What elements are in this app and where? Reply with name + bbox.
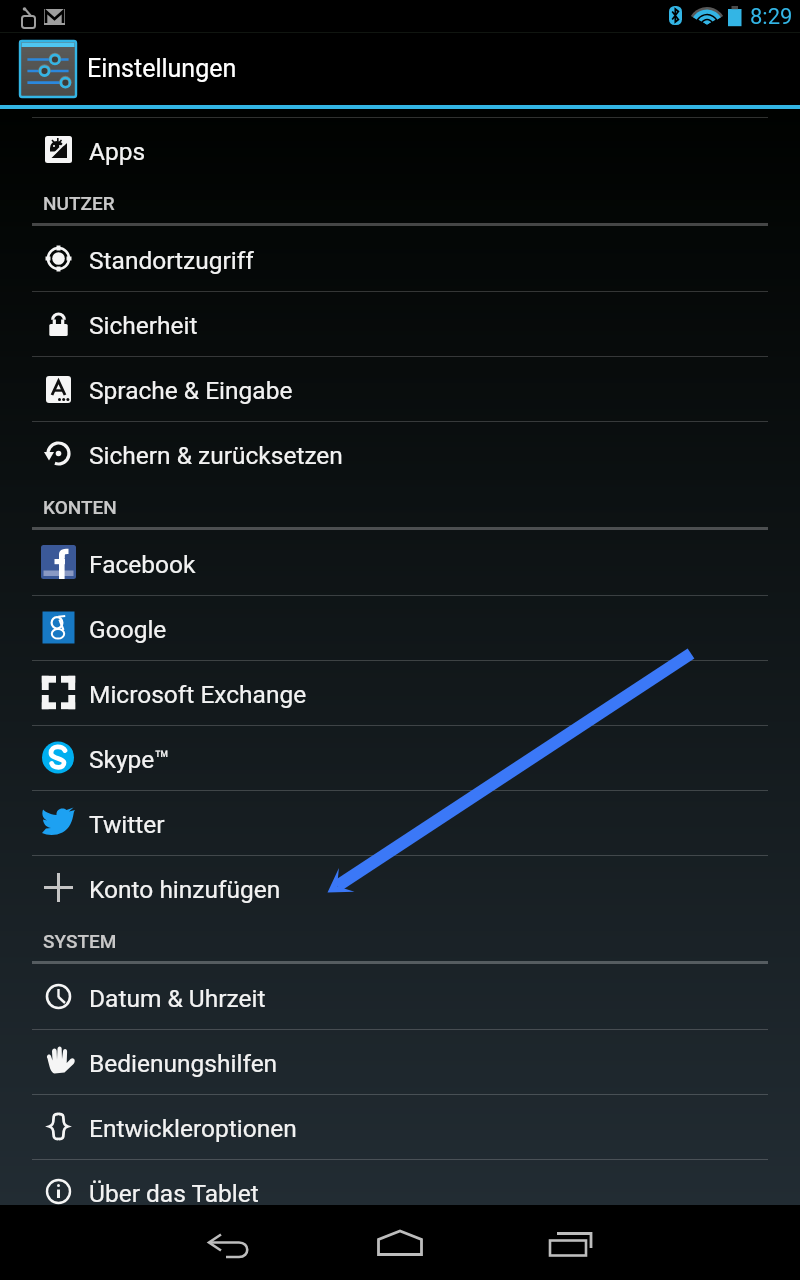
staticText: Einstellungen — [87, 54, 237, 83]
button[interactable]: Konto hinzufügen — [0, 855, 800, 920]
button[interactable]: Home — [315, 1205, 485, 1280]
button[interactable]: Recent apps — [485, 1205, 655, 1280]
button[interactable]: Google — [0, 595, 800, 660]
button[interactable]: Bedienungshilfen — [0, 1029, 800, 1094]
staticText: Standortzugriff — [89, 246, 254, 275]
button[interactable]: Apps — [0, 117, 800, 182]
button[interactable]: Einstellungen — [0, 33, 800, 109]
button[interactable]: Sprache & Eingabe — [0, 356, 800, 421]
staticText: SYSTEM — [43, 930, 117, 952]
button[interactable]: Sichern & zurücksetzen — [0, 421, 800, 486]
staticText: Sprache & Eingabe — [89, 376, 293, 405]
button[interactable]: Standortzugriff — [0, 226, 800, 291]
staticText: Konto hinzufügen — [89, 875, 281, 904]
staticText: 8:29 — [750, 4, 793, 30]
staticText: Entwickleroptionen — [89, 1114, 297, 1143]
button[interactable]: Skype™ — [0, 725, 800, 790]
button[interactable]: Datum & Uhrzeit — [0, 964, 800, 1029]
button[interactable]: Facebook — [0, 530, 800, 595]
staticText: NUTZER — [43, 192, 115, 214]
staticText: Apps — [89, 137, 146, 166]
staticText: Google — [89, 615, 167, 644]
staticText: Sicherheit — [89, 311, 198, 340]
staticText: Microsoft Exchange — [89, 680, 307, 709]
staticText: Sichern & zurücksetzen — [89, 441, 343, 470]
staticText: Datum & Uhrzeit — [89, 984, 266, 1013]
button[interactable]: Entwickleroptionen — [0, 1094, 800, 1159]
staticText: Über das Tablet — [89, 1179, 259, 1208]
staticText: Skype™ — [89, 745, 170, 774]
staticText: Bedienungshilfen — [89, 1049, 278, 1078]
button[interactable]: Über das Tablet — [0, 1159, 800, 1224]
button[interactable]: Twitter — [0, 790, 800, 855]
button[interactable]: Microsoft Exchange — [0, 660, 800, 725]
staticText: KONTEN — [43, 496, 117, 518]
staticText: Twitter — [89, 810, 165, 839]
button[interactable]: Back — [145, 1205, 315, 1280]
button[interactable]: Sicherheit — [0, 291, 800, 356]
staticText: Facebook — [89, 550, 196, 579]
